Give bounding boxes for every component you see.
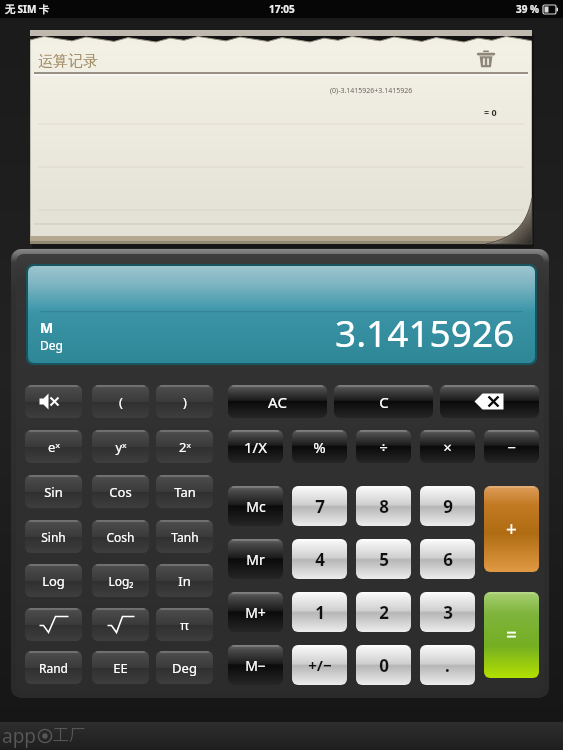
staticText: + bbox=[506, 516, 517, 542]
staticText: 6 bbox=[443, 548, 453, 571]
button[interactable]: In bbox=[156, 564, 213, 597]
staticText: × bbox=[443, 437, 452, 457]
staticText: % bbox=[313, 437, 326, 457]
button[interactable]: Tanh bbox=[156, 520, 213, 553]
staticText: 工厂 bbox=[53, 726, 85, 746]
button[interactable]: 0 bbox=[356, 645, 411, 685]
button[interactable]: + bbox=[484, 486, 539, 572]
staticText: In bbox=[178, 572, 191, 590]
staticText: 2ˣ bbox=[179, 438, 191, 456]
button[interactable]: 6 bbox=[420, 539, 475, 579]
staticText: Deg bbox=[172, 659, 197, 677]
staticText: = 0 bbox=[484, 106, 497, 118]
button[interactable]: Square root bbox=[25, 608, 82, 641]
staticText: 4 bbox=[315, 548, 325, 571]
staticText: ÷ bbox=[379, 437, 388, 457]
staticText: (0)-3.1415926+3.1415926 bbox=[330, 86, 413, 96]
button[interactable]: eˣ bbox=[25, 430, 82, 463]
staticText: 7 bbox=[315, 495, 325, 518]
button[interactable]: Rand bbox=[25, 651, 82, 684]
staticText: 3 bbox=[443, 601, 453, 624]
button[interactable]: M+ bbox=[228, 592, 283, 632]
button[interactable]: 9 bbox=[420, 486, 475, 526]
staticText: = bbox=[506, 622, 517, 648]
button[interactable]: M− bbox=[228, 645, 283, 685]
button[interactable]: x root of y bbox=[92, 608, 149, 641]
button[interactable]: π bbox=[156, 608, 213, 641]
button[interactable]: ÷ bbox=[356, 430, 411, 463]
staticText: 1 bbox=[315, 601, 325, 624]
button[interactable]: ) bbox=[156, 385, 213, 418]
staticText: . bbox=[445, 654, 450, 677]
button[interactable]: 5 bbox=[356, 539, 411, 579]
staticText: eˣ bbox=[48, 438, 60, 456]
button[interactable]: = bbox=[484, 592, 539, 678]
staticText: yˣ bbox=[115, 438, 127, 456]
button[interactable]: 2 bbox=[356, 592, 411, 632]
button[interactable]: Backspace bbox=[440, 385, 539, 418]
button[interactable]: Sinh bbox=[25, 520, 82, 553]
staticText: app bbox=[2, 723, 37, 749]
staticText: 0 bbox=[379, 654, 389, 677]
button[interactable]: Cosh bbox=[92, 520, 149, 553]
button[interactable]: AC bbox=[228, 385, 327, 418]
button[interactable]: 2ˣ bbox=[156, 430, 213, 463]
staticText: 1/X bbox=[244, 437, 267, 457]
button[interactable]: Mute bbox=[25, 385, 82, 418]
staticText: Cosh bbox=[106, 529, 135, 545]
button[interactable]: 1 bbox=[292, 592, 347, 632]
staticText: EE bbox=[113, 659, 128, 677]
staticText: 8 bbox=[379, 495, 389, 518]
staticText: Cos bbox=[109, 483, 132, 501]
button[interactable]: Log bbox=[25, 564, 82, 597]
button[interactable]: Log₂ bbox=[92, 564, 149, 597]
button[interactable]: % bbox=[292, 430, 347, 463]
button[interactable]: yˣ bbox=[92, 430, 149, 463]
button[interactable]: 3 bbox=[420, 592, 475, 632]
staticText: 17:05 bbox=[269, 2, 295, 16]
button[interactable]: . bbox=[420, 645, 475, 685]
staticText: AC bbox=[268, 392, 287, 412]
button[interactable]: × bbox=[420, 430, 475, 463]
staticText: 3.1415926 bbox=[335, 307, 515, 357]
button[interactable]: Sin bbox=[25, 475, 82, 508]
button[interactable]: 7 bbox=[292, 486, 347, 526]
staticText: Mr bbox=[246, 550, 265, 569]
button[interactable]: − bbox=[484, 430, 539, 463]
staticText: 运算记录 bbox=[38, 52, 98, 71]
button[interactable]: Clear history bbox=[472, 46, 500, 74]
button[interactable]: Mr bbox=[228, 539, 283, 579]
button[interactable]: Mc bbox=[228, 486, 283, 526]
staticText: π bbox=[180, 616, 189, 634]
staticText: Tanh bbox=[171, 529, 199, 545]
button[interactable]: Deg bbox=[156, 651, 213, 684]
button[interactable]: 8 bbox=[356, 486, 411, 526]
staticText: Log₂ bbox=[108, 573, 134, 589]
button[interactable]: +/− bbox=[292, 645, 347, 685]
staticText: ) bbox=[183, 393, 187, 411]
staticText: 9 bbox=[443, 495, 453, 518]
staticText: Deg bbox=[40, 337, 63, 353]
staticText: +/− bbox=[308, 655, 332, 675]
staticText: M+ bbox=[245, 603, 266, 622]
staticText: 无 SIM 卡 bbox=[5, 2, 50, 16]
button[interactable]: C bbox=[334, 385, 433, 418]
staticText: Tan bbox=[174, 483, 196, 501]
button[interactable]: Cos bbox=[92, 475, 149, 508]
staticText: − bbox=[507, 437, 516, 457]
button[interactable]: 4 bbox=[292, 539, 347, 579]
staticText: Sin bbox=[44, 483, 63, 501]
staticText: 39 % bbox=[516, 2, 540, 16]
staticText: 5 bbox=[379, 548, 389, 571]
staticText: M− bbox=[245, 656, 266, 675]
staticText: ( bbox=[119, 393, 123, 411]
staticText: Log bbox=[42, 572, 65, 590]
button[interactable]: Tan bbox=[156, 475, 213, 508]
staticText: C bbox=[379, 392, 389, 412]
button[interactable]: ( bbox=[92, 385, 149, 418]
button[interactable]: EE bbox=[92, 651, 149, 684]
button[interactable]: 1/X bbox=[228, 430, 283, 463]
staticText: 2 bbox=[379, 601, 389, 624]
staticText: M bbox=[40, 318, 54, 337]
